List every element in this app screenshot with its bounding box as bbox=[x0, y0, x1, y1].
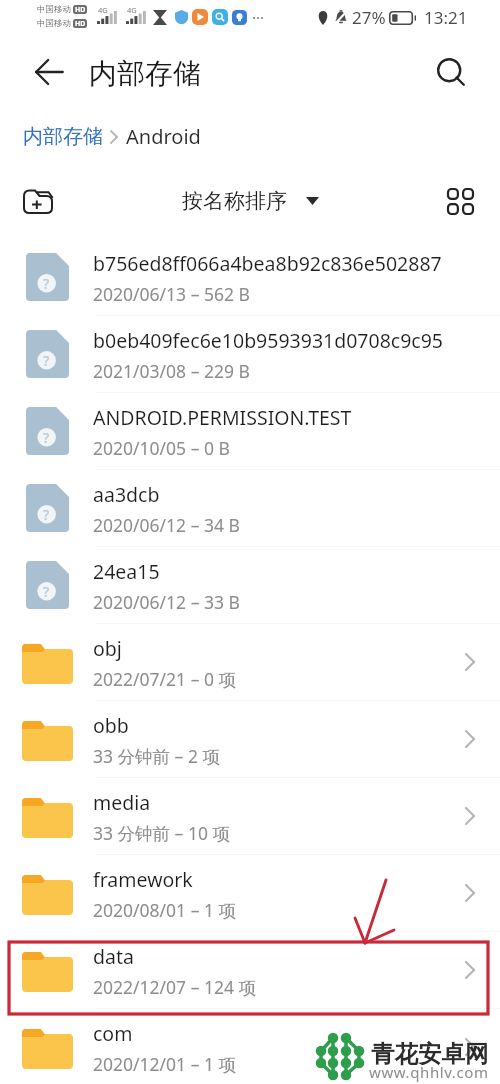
button[interactable]: data bbox=[0, 931, 500, 1008]
staticText: framework bbox=[93, 866, 193, 893]
button[interactable]: ? bbox=[0, 238, 500, 315]
button[interactable]: New folder bbox=[16, 179, 60, 223]
button[interactable]: 按名称排序 bbox=[182, 188, 319, 214]
staticText: 2020/06/12 – 33 B bbox=[93, 590, 240, 614]
staticText: HD bbox=[75, 19, 86, 28]
staticText: 按名称排序 bbox=[182, 188, 287, 214]
staticText: 13:21 bbox=[424, 6, 468, 29]
staticText: 2020/08/01 – 1 项 bbox=[93, 898, 237, 922]
staticText: ? bbox=[43, 505, 50, 524]
staticText: b756ed8ff066a4bea8b92c836e502887 bbox=[93, 250, 442, 277]
button[interactable]: obj bbox=[0, 623, 500, 700]
staticText: 2020/12/01 – 1 项 bbox=[93, 1052, 237, 1076]
staticText: 2020/10/05 – 0 B bbox=[93, 436, 230, 460]
staticText: 中国移动 bbox=[37, 18, 71, 29]
staticText: 4G bbox=[127, 5, 137, 15]
staticText: media bbox=[93, 789, 151, 816]
staticText: com bbox=[93, 1020, 133, 1047]
button[interactable]: ? bbox=[0, 546, 500, 623]
staticText: obb bbox=[93, 712, 129, 739]
staticText: ? bbox=[43, 428, 50, 447]
button[interactable]: Back bbox=[27, 50, 71, 94]
staticText: b0eb409fec6e10b9593931d0708c9c95 bbox=[93, 327, 443, 354]
staticText: 33 分钟前 – 10 项 bbox=[93, 821, 230, 845]
button[interactable]: framework bbox=[0, 854, 500, 931]
staticText: 中国移动 bbox=[37, 4, 71, 15]
staticText: 2021/03/08 – 229 B bbox=[93, 359, 250, 383]
button[interactable]: Android bbox=[126, 123, 201, 150]
staticText: ? bbox=[43, 274, 50, 293]
button[interactable]: ? bbox=[0, 315, 500, 392]
staticText: ? bbox=[43, 582, 50, 601]
button[interactable]: Grid view bbox=[438, 179, 482, 223]
staticText: 内部存储 bbox=[89, 56, 201, 91]
staticText: data bbox=[93, 943, 134, 970]
staticText: 2020/06/13 – 562 B bbox=[93, 282, 250, 306]
button[interactable]: ? bbox=[0, 469, 500, 546]
staticText: 27% bbox=[352, 6, 386, 29]
staticText: ··· bbox=[252, 7, 265, 27]
staticText: HD bbox=[75, 5, 86, 14]
staticText: 青花安卓网 bbox=[371, 1039, 489, 1069]
staticText: ? bbox=[43, 351, 50, 370]
staticText: 4G bbox=[98, 5, 108, 15]
button[interactable]: com bbox=[0, 1008, 500, 1084]
staticText: 24ea15 bbox=[93, 558, 160, 585]
staticText: ANDROID.PERMISSION.TEST bbox=[93, 404, 352, 431]
staticText: 2022/07/21 – 0 项 bbox=[93, 667, 237, 691]
button[interactable]: Search bbox=[430, 51, 474, 95]
button[interactable]: 内部存储 bbox=[23, 124, 103, 149]
staticText: www.qhhlv.com bbox=[369, 1062, 489, 1082]
staticText: 2020/06/12 – 34 B bbox=[93, 513, 240, 537]
button[interactable]: media bbox=[0, 777, 500, 854]
staticText: aa3dcb bbox=[93, 481, 160, 508]
staticText: 2022/12/07 – 124 项 bbox=[93, 975, 257, 999]
button[interactable]: ? bbox=[0, 392, 500, 469]
staticText: 33 分钟前 – 2 项 bbox=[93, 744, 220, 768]
staticText: obj bbox=[93, 635, 122, 662]
button[interactable]: obb bbox=[0, 700, 500, 777]
